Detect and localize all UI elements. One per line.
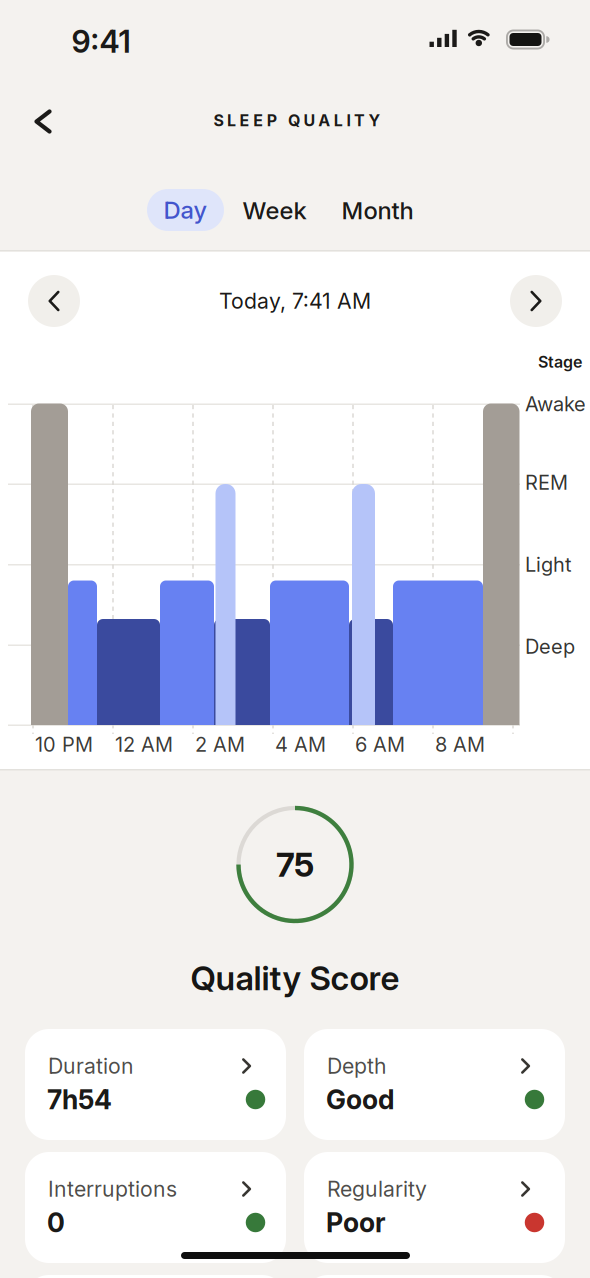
staticText: 12 AM: [115, 733, 173, 756]
button[interactable]: [28, 106, 58, 136]
button[interactable]: Duration: [25, 1029, 286, 1140]
staticText: Quality Score: [190, 958, 399, 998]
staticText: 10 PM: [35, 733, 93, 756]
button[interactable]: Interruptions: [25, 1152, 286, 1263]
staticText: Week: [242, 196, 306, 225]
staticText: 4 AM: [275, 733, 326, 756]
staticText: Stage: [538, 353, 582, 371]
staticText: Deep: [525, 635, 575, 658]
staticText: Awake: [525, 392, 586, 416]
staticText: Month: [341, 196, 413, 225]
button[interactable]: Regularity: [304, 1152, 565, 1263]
button[interactable]: Week: [242, 196, 306, 225]
staticText: Regularity: [327, 1176, 427, 1202]
staticText: Interruptions: [48, 1176, 177, 1202]
staticText: 2 AM: [195, 733, 245, 756]
staticText: 8 AM: [435, 733, 485, 756]
button[interactable]: Month: [341, 196, 413, 225]
staticText: Poor: [326, 1207, 386, 1238]
staticText: 0: [47, 1207, 65, 1238]
staticText: 9:41: [71, 23, 130, 60]
staticText: SLEEP QUALITY: [213, 111, 381, 130]
button[interactable]: [510, 275, 562, 327]
button[interactable]: Day: [147, 189, 224, 231]
staticText: Duration: [48, 1053, 134, 1079]
staticText: Day: [163, 196, 207, 224]
button[interactable]: Depth: [304, 1029, 565, 1140]
staticText: Today, 7:41 AM: [219, 288, 371, 314]
staticText: 6 AM: [355, 733, 405, 756]
staticText: Good: [326, 1084, 395, 1115]
button[interactable]: [28, 275, 80, 327]
staticText: 75: [276, 845, 314, 884]
staticText: Depth: [327, 1053, 387, 1079]
staticText: REM: [525, 471, 568, 494]
staticText: Light: [525, 553, 572, 576]
staticText: 7h54: [47, 1084, 112, 1115]
